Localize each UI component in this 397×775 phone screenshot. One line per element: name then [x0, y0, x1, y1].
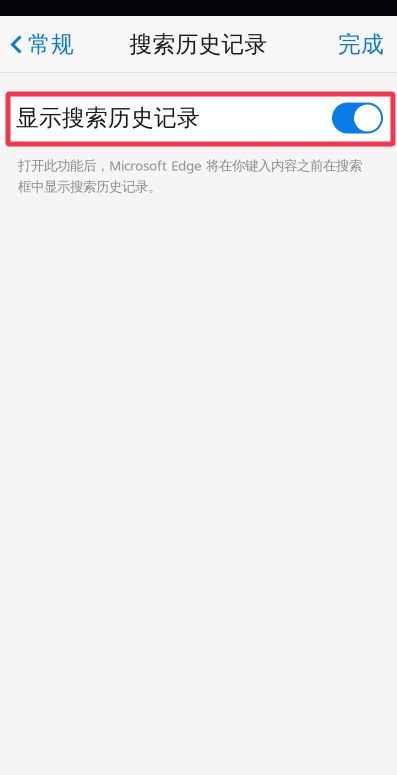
- staticText: 框中显示搜索历史记录。: [18, 178, 161, 195]
- staticText: 搜索历史记录: [129, 31, 267, 58]
- button[interactable]: 显示搜索历史记录: [0, 93, 397, 143]
- staticText: 完成: [338, 31, 384, 58]
- button[interactable]: 完成: [328, 22, 397, 66]
- staticText: 显示搜索历史记录: [16, 104, 200, 132]
- button[interactable]: 常规: [0, 22, 84, 66]
- staticText: 常规: [28, 31, 74, 58]
- staticText: 打开此功能后，Microsoft Edge 将在你键入内容之前在搜索: [18, 156, 362, 174]
